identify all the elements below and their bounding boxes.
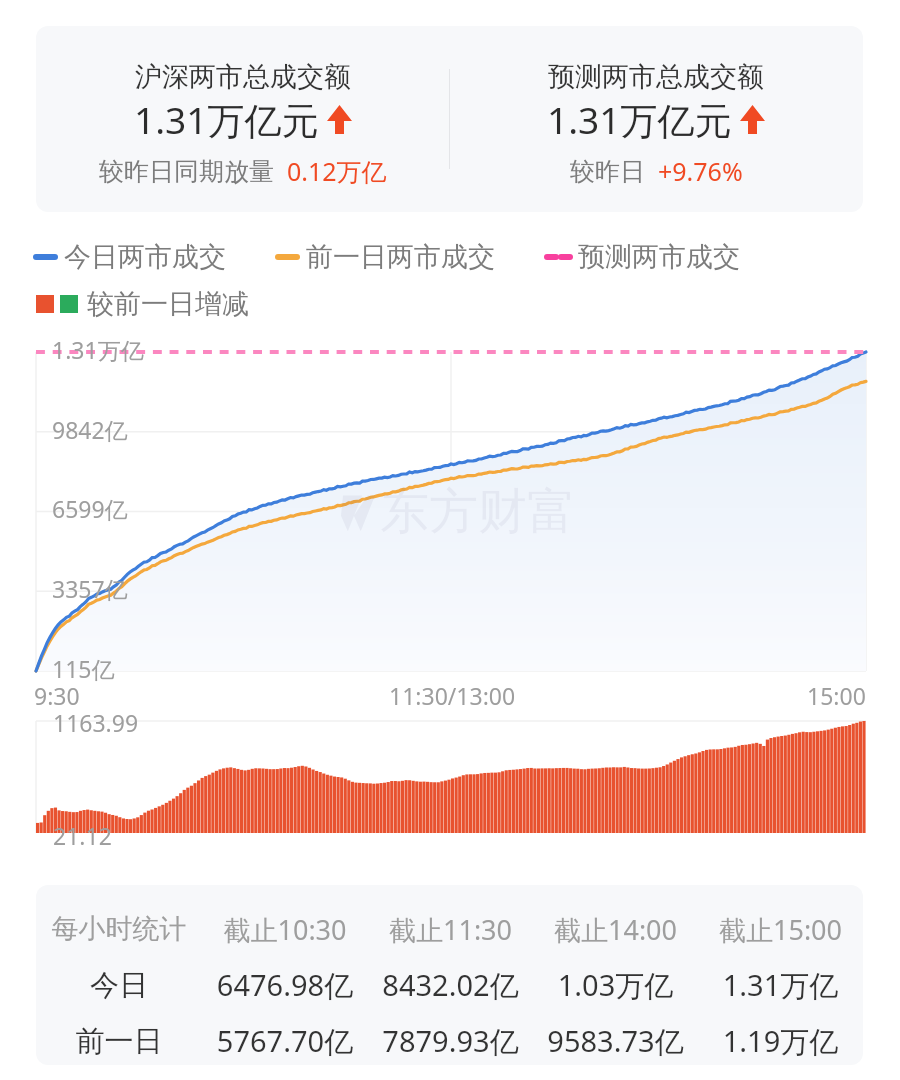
staticText: 今日两市成交 — [64, 240, 226, 274]
staticText: 今日 — [36, 967, 202, 1004]
staticText: 1.03万亿 — [533, 965, 698, 1005]
staticText: 较昨日同期放量 — [99, 156, 274, 187]
staticText: 每小时统计 — [36, 912, 202, 946]
staticText: 9583.73亿 — [533, 1021, 698, 1061]
staticText: 沪深两市总成交额 — [135, 60, 351, 94]
staticText: 5767.70亿 — [202, 1021, 368, 1061]
staticText: 9842亿 — [52, 414, 128, 445]
staticText: 8432.02亿 — [368, 965, 533, 1005]
staticText: 较前一日增减 — [87, 287, 249, 321]
staticText: 21.12 — [53, 820, 112, 851]
staticText: 预测两市总成交额 — [548, 60, 764, 94]
staticText: 前一日两市成交 — [306, 240, 495, 274]
staticText: 11:30/13:00 — [389, 680, 516, 711]
staticText: 15:00 — [807, 680, 866, 711]
staticText: 1.31万亿 — [698, 965, 863, 1005]
staticText: 1.19万亿 — [698, 1021, 863, 1061]
staticText: 7879.93亿 — [368, 1021, 533, 1061]
staticText: 1.31万亿 — [52, 334, 144, 365]
staticText: 1.31万亿元 — [547, 94, 732, 145]
staticText: 1163.99 — [53, 707, 139, 738]
staticText: 截止11:30 — [368, 911, 533, 948]
button[interactable]: 每小时统计 — [36, 885, 863, 1065]
staticText: 115亿 — [52, 653, 115, 684]
staticText: 截止15:00 — [698, 911, 863, 948]
staticText: 6599亿 — [52, 493, 128, 524]
staticText: 6476.98亿 — [202, 965, 368, 1005]
staticText: 3357亿 — [52, 573, 128, 604]
staticText: 1.31万亿元 — [134, 94, 319, 145]
button[interactable]: 沪深两市总成交额 — [36, 26, 863, 212]
staticText: 较昨日 — [570, 156, 645, 187]
staticText: 9:30 — [34, 680, 80, 711]
staticText: 截止14:00 — [533, 911, 698, 948]
staticText: 前一日 — [36, 1023, 202, 1060]
staticText: +9.76% — [658, 154, 743, 188]
staticText: 截止10:30 — [202, 911, 368, 948]
staticText: 预测两市成交 — [578, 240, 740, 274]
staticText: 0.12万亿 — [287, 154, 387, 188]
staticText: 东方财富 — [380, 481, 576, 543]
